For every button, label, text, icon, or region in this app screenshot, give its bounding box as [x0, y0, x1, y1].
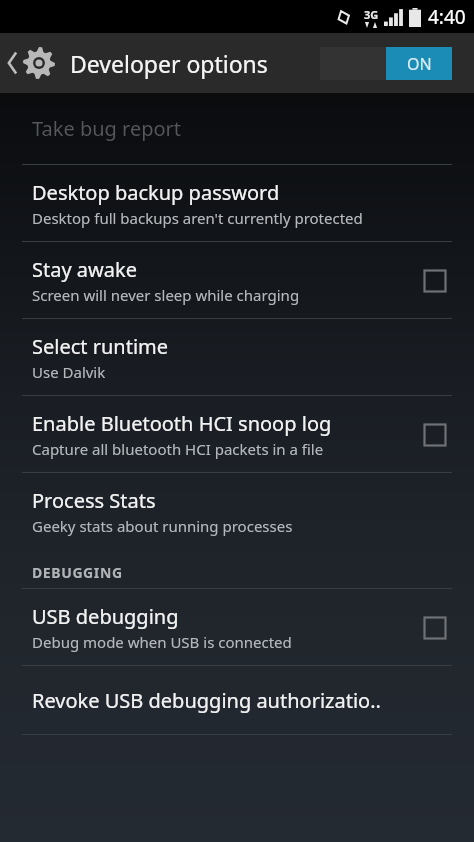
button[interactable]: Take bug report: [0, 93, 474, 164]
staticText: Geeky stats about running processes: [32, 516, 293, 536]
button[interactable]: Enable Bluetooth HCI snoop log: [0, 397, 474, 472]
staticText: Capture all bluetooth HCI packets in a f…: [32, 439, 324, 459]
staticText: Process Stats: [32, 487, 156, 514]
button[interactable]: Process Stats: [0, 474, 474, 549]
button[interactable]: Back: [0, 33, 62, 93]
button[interactable]: USB debugging: [0, 590, 474, 665]
staticText: Revoke USB debugging authorizatio..: [32, 687, 381, 714]
button[interactable]: USB debugging: [414, 607, 456, 649]
button[interactable]: Revoke USB debugging authorizatio..: [0, 667, 474, 734]
staticText: Enable Bluetooth HCI snoop log: [32, 410, 332, 437]
staticText: Stay awake: [32, 256, 137, 283]
staticText: USB debugging: [32, 603, 179, 630]
staticText: Screen will never sleep while charging: [32, 285, 300, 305]
staticText: Developer options: [70, 48, 268, 79]
staticText: Select runtime: [32, 333, 169, 360]
button[interactable]: Developer options on: [320, 47, 452, 80]
staticText: 4:40: [428, 4, 466, 30]
staticText: Debug mode when USB is connected: [32, 632, 292, 652]
staticText: DEBUGGING: [32, 563, 123, 582]
other: Back: [6, 50, 19, 76]
button[interactable]: Desktop backup password: [0, 166, 474, 241]
button[interactable]: Stay awake: [414, 260, 456, 302]
button[interactable]: Stay awake: [0, 243, 474, 318]
button[interactable]: Enable Bluetooth HCI snoop log: [414, 414, 456, 456]
staticText: Desktop backup password: [32, 179, 280, 206]
staticText: Take bug report: [32, 115, 182, 142]
button[interactable]: Select runtime: [0, 320, 474, 395]
staticText: Use Dalvik: [32, 362, 106, 382]
staticText: Desktop full backups aren't currently pr…: [32, 208, 363, 228]
staticText: ON: [407, 53, 432, 75]
staticText: 3G: [364, 7, 379, 22]
